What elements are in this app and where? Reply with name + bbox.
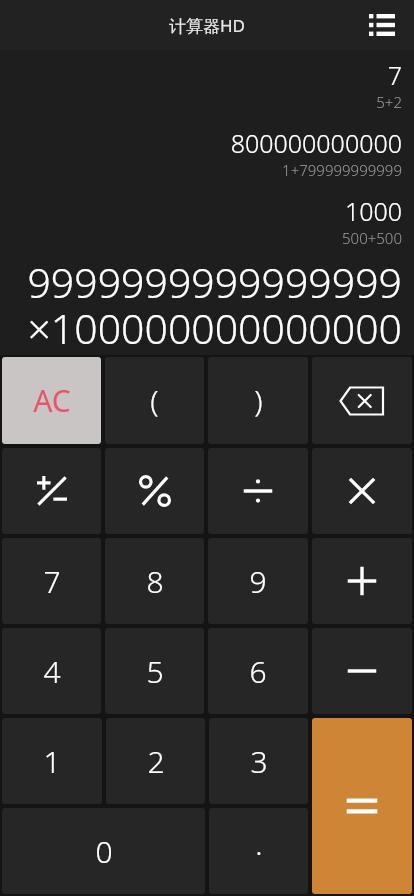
staticText: 5 xyxy=(146,651,164,692)
staticText: 5+2 xyxy=(376,92,402,112)
button[interactable]: Equals xyxy=(312,718,412,894)
staticText: 计算器HD xyxy=(169,14,246,37)
button[interactable]: ) xyxy=(208,357,308,444)
button[interactable]: 5 xyxy=(105,628,204,714)
button[interactable]: 1 xyxy=(2,718,102,804)
staticText: 9 xyxy=(249,561,267,602)
button[interactable]: 3 xyxy=(209,718,308,804)
staticText: 0 xyxy=(95,831,113,872)
staticText: 2 xyxy=(147,741,165,782)
staticText: 7 xyxy=(43,561,61,602)
staticText: 8 xyxy=(146,561,164,602)
button[interactable]: Divide xyxy=(208,448,308,534)
staticText: 3 xyxy=(250,741,268,782)
button[interactable]: Backspace xyxy=(312,357,412,444)
staticText: ) xyxy=(254,380,263,421)
button[interactable]: History list xyxy=(362,5,402,45)
staticText: 6 xyxy=(249,651,267,692)
staticText: 4 xyxy=(43,651,61,692)
staticText: 1 xyxy=(43,741,61,782)
button[interactable]: 0 xyxy=(2,808,205,894)
button[interactable]: 4 xyxy=(2,628,101,714)
button[interactable]: 2 xyxy=(106,718,205,804)
button[interactable]: Multiply xyxy=(312,448,412,534)
staticText: 1000 xyxy=(344,194,402,228)
staticText: · xyxy=(255,831,263,872)
staticText: 1+799999999999 xyxy=(282,160,402,180)
staticText: ( xyxy=(150,380,159,421)
button[interactable]: 7 xyxy=(2,538,101,624)
button[interactable]: AC xyxy=(2,357,101,444)
button[interactable]: Minus xyxy=(312,628,412,714)
button[interactable]: Plus minus xyxy=(2,448,101,534)
button[interactable]: 6 xyxy=(208,628,308,714)
staticText: 500+500 xyxy=(342,228,402,248)
staticText: AC xyxy=(33,380,71,421)
staticText: 7 xyxy=(387,58,402,92)
button[interactable]: 9 xyxy=(208,538,308,624)
button[interactable]: 8 xyxy=(105,538,204,624)
button[interactable]: ( xyxy=(105,357,204,444)
staticText: 800000000000 xyxy=(230,126,402,160)
staticText: 9999999999999999 ×10000000000000000 xyxy=(12,254,402,355)
button[interactable]: · xyxy=(209,808,308,894)
button[interactable]: Plus xyxy=(312,538,412,624)
button[interactable]: Percent xyxy=(105,448,204,534)
